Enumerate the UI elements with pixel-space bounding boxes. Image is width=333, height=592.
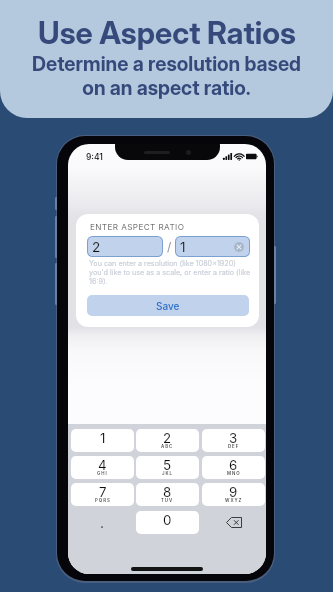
staticText: 4 (98, 457, 107, 473)
staticText: PQRS (95, 498, 111, 503)
button[interactable]: 9 (202, 483, 265, 506)
staticText: 9 (229, 484, 238, 500)
staticText: MNO (227, 471, 241, 476)
staticText: 1 (180, 239, 186, 255)
button[interactable]: 1 (176, 237, 249, 256)
button[interactable]: Save (87, 295, 249, 316)
staticText: 6 (229, 457, 238, 473)
button[interactable]: 7 (71, 483, 134, 506)
staticText: JKL (162, 471, 173, 476)
staticText: Save (156, 300, 180, 312)
button[interactable]: 0 (136, 511, 199, 534)
staticText: You can enter a resolution (like 1080x19… (89, 259, 251, 286)
staticText: / (167, 239, 172, 254)
button[interactable]: Clear (234, 242, 244, 252)
staticText: 7 (99, 484, 107, 500)
staticText: 2 (92, 239, 101, 255)
button[interactable]: Delete (202, 511, 265, 534)
staticText: ABC (161, 444, 174, 449)
button[interactable]: 1 (71, 429, 134, 452)
staticText: WXYZ (225, 498, 243, 503)
staticText: 1 (100, 430, 106, 446)
button[interactable]: 2 (136, 429, 199, 452)
staticText: 5 (163, 457, 172, 473)
button[interactable]: 4 (71, 456, 134, 479)
staticText: 8 (163, 484, 172, 500)
staticText: GHI (97, 471, 108, 476)
staticText: TUV (161, 498, 174, 503)
staticText: Determine a resolution based on an aspec… (32, 52, 301, 99)
staticText: 2 (163, 430, 172, 446)
button[interactable]: 6 (202, 456, 265, 479)
staticText: 9:41 (86, 152, 103, 162)
button[interactable]: 8 (136, 483, 199, 506)
button[interactable]: 3 (202, 429, 265, 452)
staticText: 3 (229, 430, 238, 446)
staticText: ENTER ASPECT RATIO (90, 222, 185, 232)
staticText: . (100, 514, 105, 531)
button[interactable]: Decimal point (71, 511, 134, 534)
staticText: Use Aspect Ratios (38, 14, 296, 51)
button[interactable]: 2 (88, 237, 162, 256)
staticText: DEF (228, 444, 240, 449)
staticText: 0 (163, 512, 172, 528)
button[interactable]: 5 (136, 456, 199, 479)
